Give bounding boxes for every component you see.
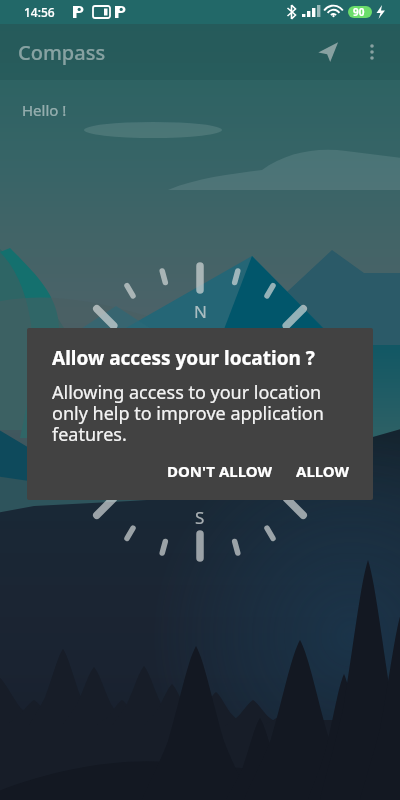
staticText: ALLOW [296,461,350,481]
staticText: Allow access your location ? [52,345,315,371]
staticText: S [195,506,205,529]
button[interactable]: More options [350,30,394,74]
button[interactable]: ALLOW [284,451,362,491]
staticText: Allowing access to your location only he… [52,380,324,447]
staticText: 90 [353,5,365,19]
staticText: DON'T ALLOW [167,461,272,481]
staticText: Hello ! [22,100,67,120]
staticText: N [194,300,207,323]
button[interactable]: Navigate [306,30,350,74]
button[interactable]: DON'T ALLOW [155,451,284,491]
staticText: Compass [18,39,106,66]
staticText: 14:56 [24,4,55,20]
